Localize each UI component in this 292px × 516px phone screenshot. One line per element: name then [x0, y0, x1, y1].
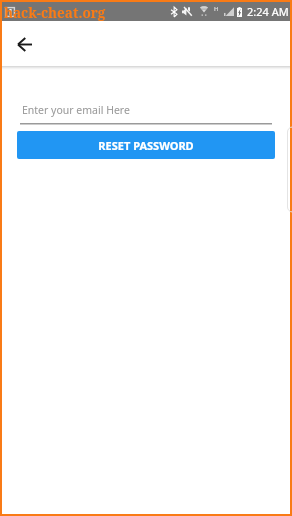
button[interactable]: Navigate up: [10, 29, 40, 59]
staticText: Enter your email Here: [22, 103, 130, 117]
staticText: 2:24 AM: [247, 4, 289, 19]
button[interactable]: Enter your email Here: [20, 103, 272, 125]
staticText: hack-cheat.org: [4, 4, 106, 22]
staticText: RESET PASSWORD: [98, 138, 194, 153]
staticText: H: [214, 5, 219, 13]
button[interactable]: RESET PASSWORD: [17, 131, 275, 159]
